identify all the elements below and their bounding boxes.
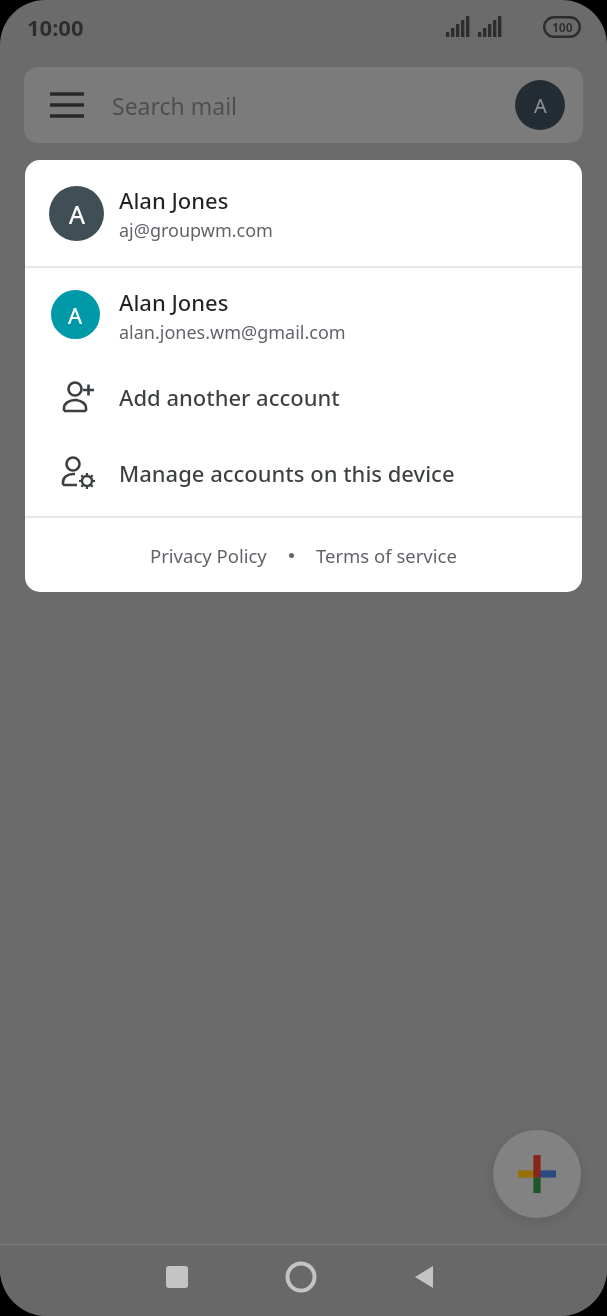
staticText: aj@groupwm.com <box>119 218 273 243</box>
button[interactable] <box>400 1253 448 1301</box>
staticText: Terms of service <box>316 543 457 568</box>
staticText: 100 <box>552 19 573 35</box>
staticText: A <box>534 92 547 119</box>
staticText: Manage accounts on this device <box>119 458 455 488</box>
button[interactable] <box>277 1253 325 1301</box>
button[interactable] <box>493 1130 581 1218</box>
staticText: Add another account <box>119 382 340 412</box>
staticText: A <box>69 197 85 231</box>
staticText: Privacy Policy <box>150 543 267 568</box>
staticText: A <box>68 300 83 330</box>
staticText: 10:00 <box>27 12 84 42</box>
button[interactable]: A <box>25 268 582 361</box>
button[interactable] <box>153 1253 201 1301</box>
staticText: Alan Jones <box>119 185 229 215</box>
staticText: Alan Jones <box>119 287 229 317</box>
button[interactable]: Terms of service <box>316 543 457 568</box>
button[interactable]: A <box>25 160 582 266</box>
button[interactable]: Search mail <box>24 67 583 143</box>
button[interactable]: Add another account <box>25 361 582 436</box>
button[interactable]: Privacy Policy <box>150 543 267 568</box>
staticText: alan.jones.wm@gmail.com <box>119 320 346 345</box>
button[interactable]: Manage accounts on this device <box>25 436 582 515</box>
staticText: Search mail <box>112 90 238 121</box>
button[interactable]: A <box>515 80 565 130</box>
